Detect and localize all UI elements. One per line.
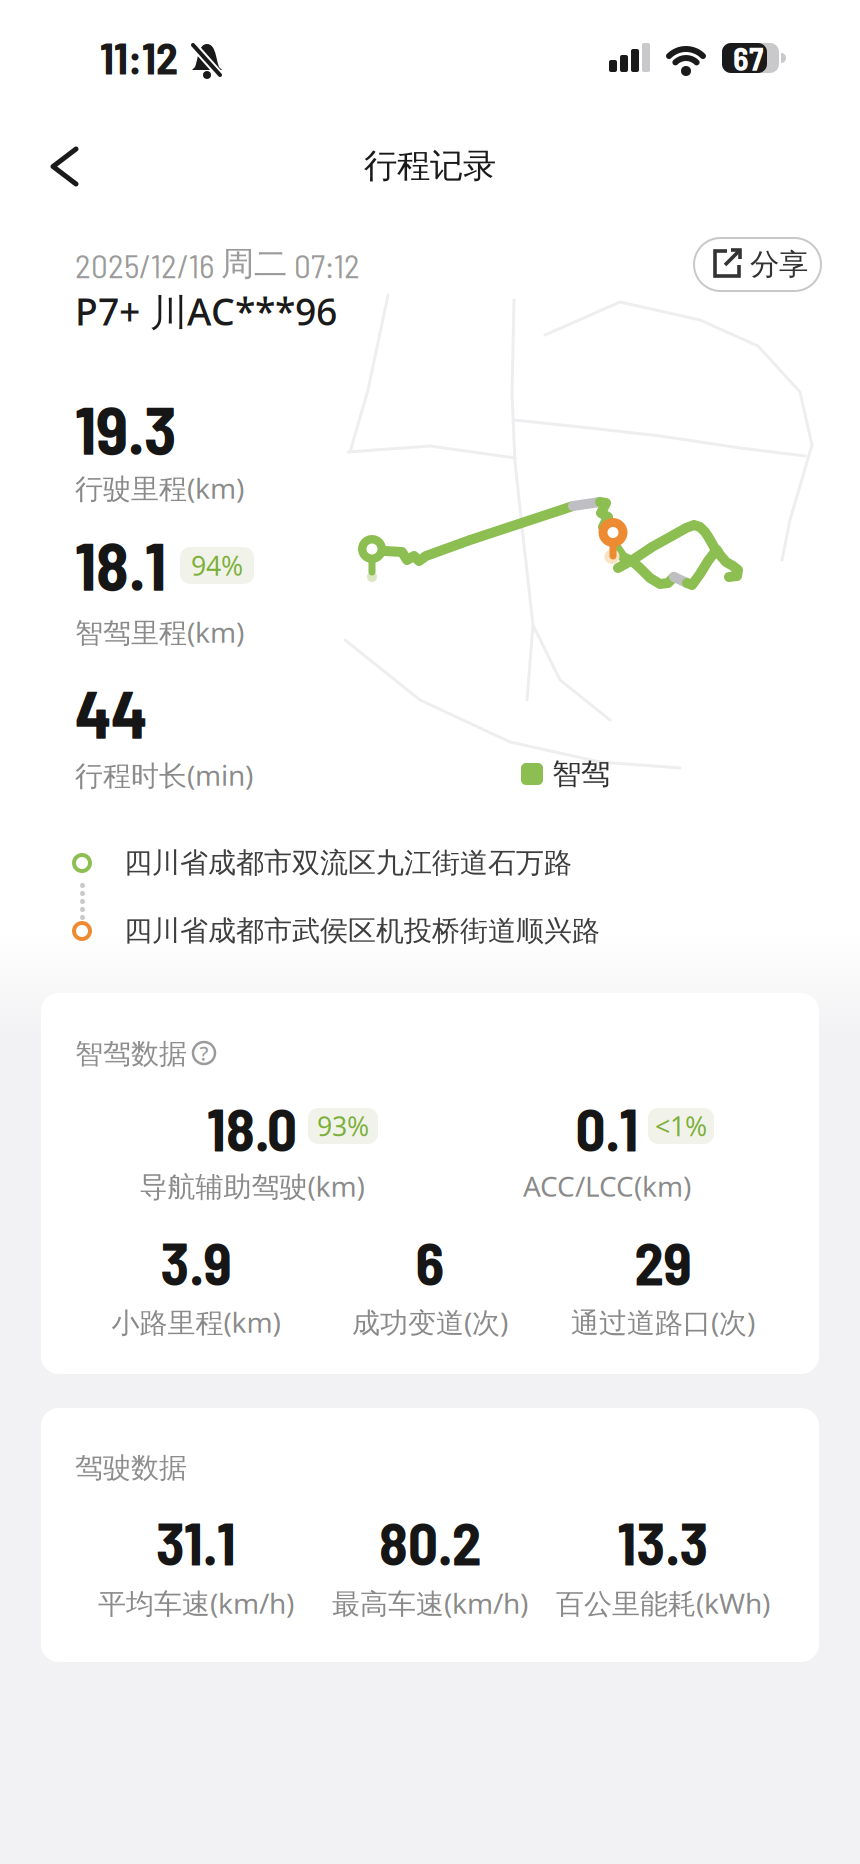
staticText: 成功变道(次)	[352, 1303, 508, 1341]
staticText: 导航辅助驾驶(km)	[139, 1167, 364, 1205]
staticText: ?	[199, 1040, 208, 1066]
staticText: 通过道路口(次)	[571, 1303, 755, 1341]
staticText: 行程记录	[364, 145, 496, 186]
staticText: 0.1	[575, 1093, 638, 1163]
staticText: 67	[733, 39, 763, 77]
staticText: 智驾数据	[75, 1037, 187, 1071]
staticText: 四川省成都市双流区九江街道石万路	[124, 846, 572, 880]
staticText: 行驶里程(km)	[75, 469, 244, 507]
staticText: 80.2	[379, 1507, 481, 1577]
staticText: 31.1	[156, 1507, 236, 1577]
staticText: 6	[415, 1227, 444, 1297]
staticText: 分享	[750, 246, 808, 282]
staticText: 13.3	[617, 1507, 708, 1577]
staticText: 2025/12/16 周二 07:12	[75, 243, 360, 285]
staticText: 29	[634, 1227, 691, 1297]
staticText: 四川省成都市武侯区机投桥街道顺兴路	[124, 914, 600, 948]
staticText: 19.3	[75, 388, 176, 468]
staticText: 3.9	[160, 1227, 231, 1297]
staticText: 44	[75, 672, 147, 752]
staticText: 93%	[317, 1108, 369, 1144]
staticText: 最高车速(km/h)	[332, 1584, 528, 1622]
button[interactable]: 分享	[0, 0, 127, 53]
staticText: 18.0	[207, 1093, 297, 1163]
staticText: 智驾	[552, 756, 610, 792]
staticText: 94%	[191, 548, 243, 583]
staticText: <1%	[655, 1108, 707, 1144]
staticText: 小路里程(km)	[111, 1303, 280, 1341]
staticText: 百公里能耗(kWh)	[556, 1584, 770, 1622]
staticText: 智驾里程(km)	[75, 613, 244, 651]
staticText: 驾驶数据	[75, 1451, 187, 1485]
staticText: 平均车速(km/h)	[98, 1584, 294, 1622]
staticText: 18.1	[75, 524, 166, 604]
staticText: 11:12	[100, 31, 178, 83]
staticText: P7+ 川AC***96	[75, 286, 337, 336]
staticText: ACC/LCC(km)	[523, 1167, 691, 1205]
staticText: 行程时长(min)	[75, 756, 253, 794]
